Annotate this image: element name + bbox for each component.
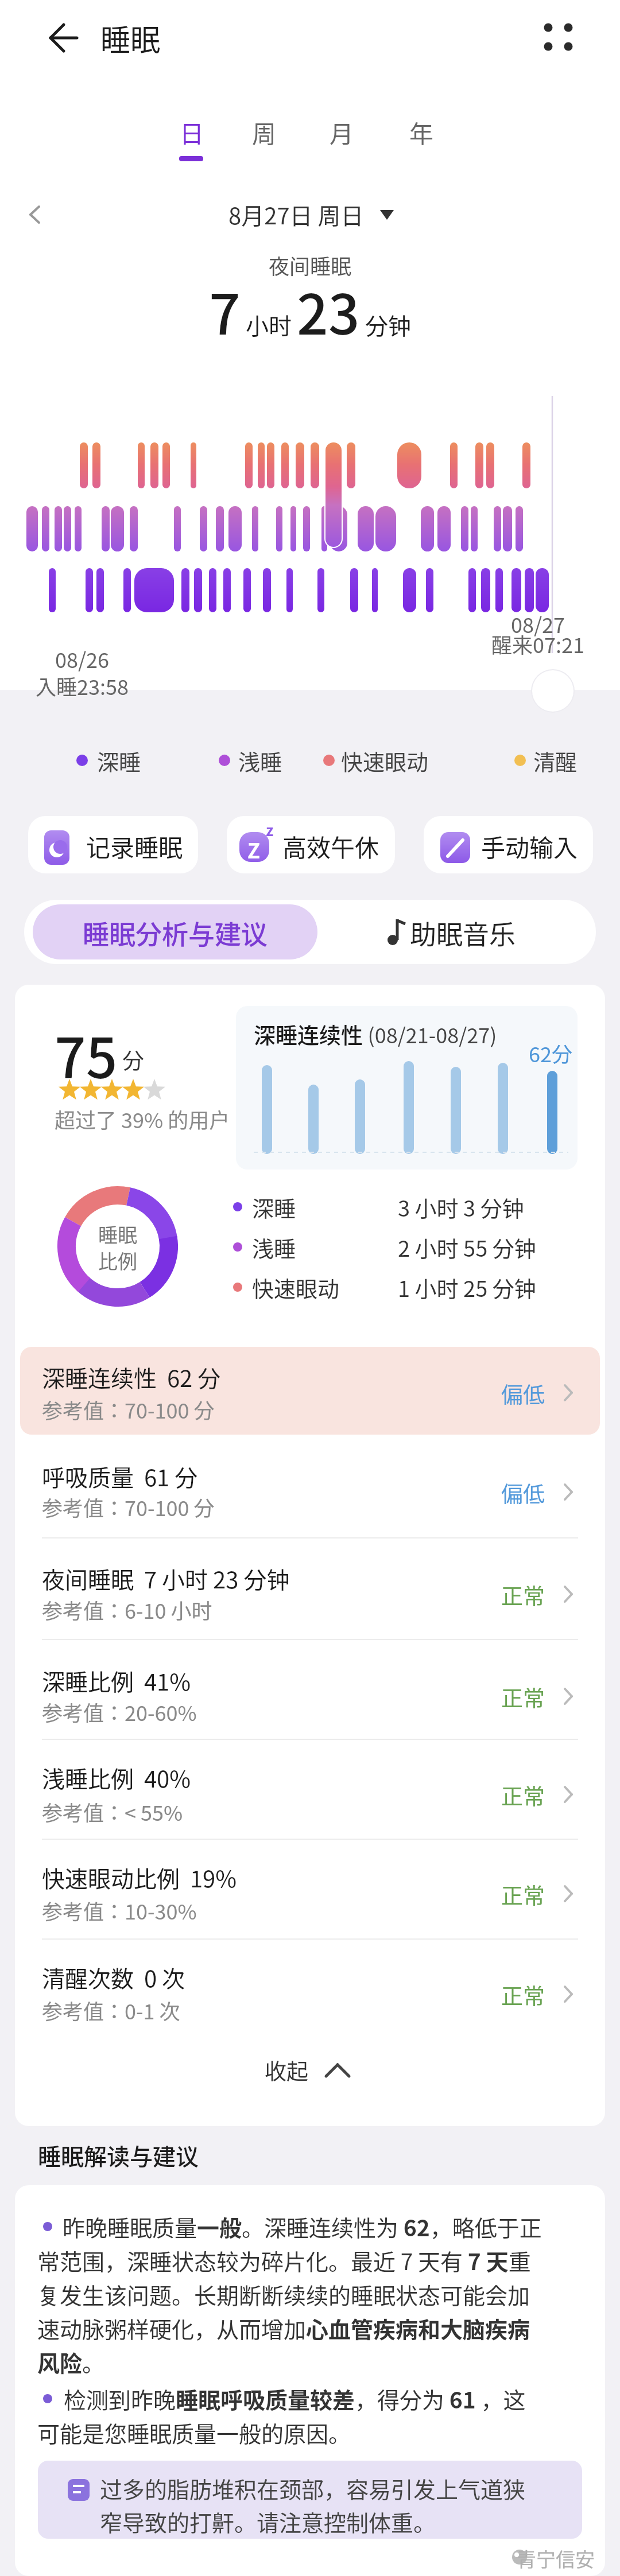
- staticText: 月: [330, 115, 354, 150]
- staticText: 参考值：< 55%: [42, 1797, 183, 1827]
- staticText: 分: [122, 1043, 145, 1075]
- button[interactable]: [227, 816, 395, 873]
- staticText: 快速眼动比例 19%: [42, 1861, 237, 1894]
- staticText: 可能是您睡眠质量一般的原因。: [37, 2416, 351, 2449]
- staticText: 08/27: [511, 609, 565, 639]
- staticText: 窄导致的打鼾。请注意控制体重。: [100, 2505, 436, 2538]
- staticText: 正常: [501, 1579, 545, 1610]
- button[interactable]: [20, 1547, 600, 1633]
- button[interactable]: [532, 670, 573, 712]
- button[interactable]: [20, 1748, 600, 1834]
- button[interactable]: [393, 110, 450, 156]
- staticText: 小时: [241, 308, 297, 341]
- staticText: 深睡比例 41%: [42, 1664, 191, 1697]
- staticText: 年: [409, 115, 434, 150]
- staticText: 正常: [501, 1779, 545, 1810]
- staticText: 青宁信安: [517, 2544, 595, 2573]
- staticText: 醒来07:21: [491, 629, 584, 659]
- staticText: 2 小时 55 分钟: [398, 1231, 536, 1263]
- staticText: 夜间睡眠 7 小时 23 分钟: [42, 1562, 290, 1595]
- staticText: 浅睡比例 40%: [42, 1761, 191, 1794]
- staticText: 深睡: [97, 745, 141, 776]
- staticText: 参考值：20-60%: [42, 1697, 197, 1727]
- staticText: 偏低: [501, 1477, 545, 1508]
- staticText: 62分: [529, 1038, 572, 1068]
- staticText: 速动脉粥样硬化，从而增加心血管疾病和大脑疾病: [37, 2312, 530, 2344]
- staticText: 参考值：0-1 次: [42, 1995, 180, 2025]
- button[interactable]: [40, 17, 80, 57]
- staticText: 3 小时 3 分钟: [398, 1191, 524, 1223]
- staticText: 1 小时 25 分钟: [398, 1272, 536, 1303]
- staticText: 助眠音乐: [410, 914, 516, 952]
- button[interactable]: [28, 816, 198, 873]
- staticText: 快速眼动: [252, 1272, 340, 1303]
- button[interactable]: [424, 816, 593, 873]
- staticText: 8月27日 周日: [228, 198, 364, 231]
- staticText: 偏低: [501, 1377, 545, 1409]
- staticText: 清醒: [533, 745, 578, 776]
- button[interactable]: [313, 110, 370, 156]
- staticText: z: [266, 819, 274, 841]
- staticText: 呼吸质量 61 分: [42, 1460, 198, 1493]
- staticText: 参考值：6-10 小时: [42, 1595, 212, 1625]
- staticText: 睡眠分析与建议: [83, 914, 268, 952]
- button[interactable]: [528, 11, 586, 63]
- button[interactable]: [163, 110, 220, 156]
- button[interactable]: [317, 904, 587, 959]
- staticText: Z: [247, 834, 261, 864]
- staticText: 深睡连续性 (08/21-08/27): [254, 1018, 497, 1050]
- staticText: 睡眠解读与建议: [38, 2139, 199, 2172]
- staticText: 记录睡眠: [86, 829, 183, 864]
- button[interactable]: [20, 1649, 600, 1735]
- button[interactable]: [20, 1848, 600, 1934]
- staticText: 超过了 39% 的用户: [55, 1104, 230, 1134]
- staticText: 风险。: [37, 2346, 105, 2378]
- button[interactable]: [33, 904, 317, 959]
- staticText: 复发生该问题。长期断断续续的睡眠状态可能会加: [37, 2278, 530, 2310]
- staticText: 7: [209, 271, 241, 340]
- button[interactable]: [20, 1347, 600, 1435]
- staticText: 高效午休: [282, 829, 379, 864]
- button[interactable]: [38, 2461, 582, 2539]
- staticText: 参考值：70-100 分: [42, 1492, 215, 1522]
- staticText: 正常: [501, 1979, 545, 2010]
- staticText: 正常: [501, 1878, 545, 1910]
- staticText: 常范围，深睡状态较为碎片化。最近 7 天有 7 天重: [37, 2244, 531, 2276]
- staticText: 睡眠: [98, 1220, 137, 1248]
- staticText: 睡眠: [100, 17, 161, 60]
- staticText: 浅睡: [252, 1231, 296, 1263]
- button[interactable]: [235, 110, 293, 156]
- staticText: 检测到昨晚睡眠呼吸质量较差，得分为 61 ，这: [64, 2383, 526, 2415]
- staticText: 正常: [501, 1681, 545, 1712]
- staticText: 深睡连续性 62 分: [42, 1361, 221, 1394]
- staticText: 清醒次数 0 次: [42, 1961, 185, 1994]
- staticText: 浅睡: [238, 745, 282, 776]
- button[interactable]: [20, 1446, 600, 1532]
- staticText: 参考值：10-30%: [42, 1895, 197, 1925]
- button[interactable]: [21, 200, 51, 230]
- staticText: 分钟: [360, 308, 411, 341]
- button[interactable]: [207, 195, 413, 235]
- staticText: 23: [297, 271, 360, 340]
- button[interactable]: [20, 1948, 600, 2034]
- staticText: 周: [252, 115, 277, 150]
- staticText: 08/26: [55, 644, 110, 674]
- staticText: 收起: [265, 2054, 309, 2085]
- staticText: 比例: [98, 1246, 137, 1275]
- staticText: 参考值：70-100 分: [42, 1394, 215, 1424]
- staticText: 昨晚睡眠质量一般。深睡连续性为 62，略低于正: [63, 2210, 542, 2243]
- staticText: 日: [180, 115, 204, 150]
- staticText: 手动输入: [481, 829, 578, 864]
- button[interactable]: [247, 2049, 373, 2089]
- staticText: 夜间睡眠: [269, 250, 352, 280]
- staticText: 快速眼动: [341, 745, 429, 776]
- staticText: 75: [55, 1015, 118, 1083]
- staticText: 过多的脂肪堆积在颈部，容易引发上气道狭: [100, 2472, 526, 2504]
- staticText: 入睡23:58: [36, 671, 129, 701]
- staticText: 深睡: [252, 1191, 296, 1223]
